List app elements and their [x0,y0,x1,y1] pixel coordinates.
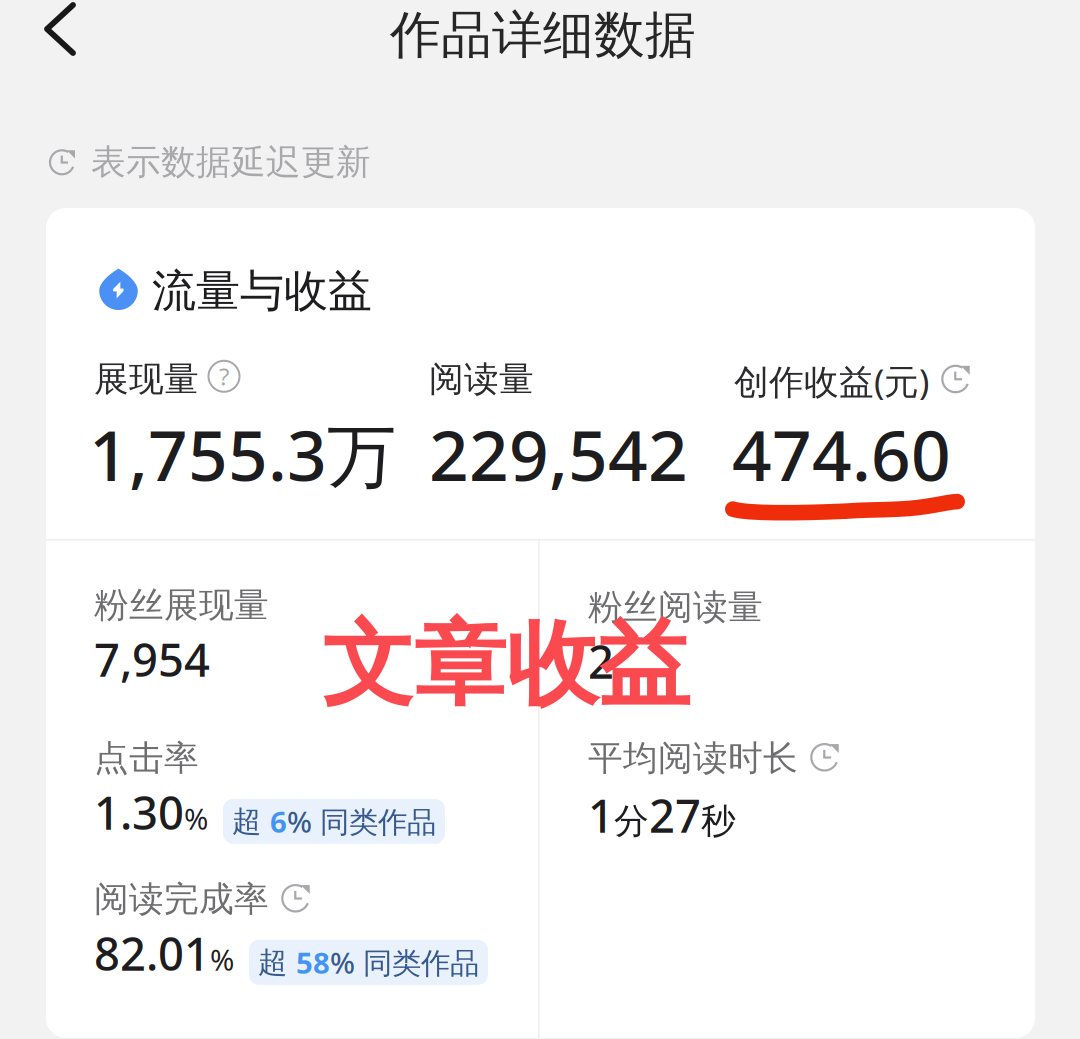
staticText: 文章收益 [322,608,690,721]
staticText: % [210,940,234,979]
staticText: 58 [296,943,330,982]
staticText: % [184,799,208,838]
staticText: 82.01 [94,923,210,983]
staticText: 分 [614,800,649,842]
button[interactable]: 关于展现量的说明 [207,359,241,393]
staticText: 1,755.3万 [89,408,396,500]
staticText: 创作收益(元) [734,358,929,404]
staticText: 229,542 [429,408,688,500]
staticText: 秒 [701,800,736,842]
staticText: 表示数据延迟更新 [91,141,371,184]
staticText: 粉丝阅读量 [588,586,763,629]
staticText: % 同类作品 [330,943,479,982]
staticText: 1.30 [94,782,184,842]
staticText: 展现量 [94,358,199,401]
staticText: 流量与收益 [152,264,372,318]
staticText: 点击率 [94,737,199,780]
staticText: 超 [232,803,270,839]
staticText: 平均阅读时长 [588,737,798,780]
staticText: 2 [588,631,614,691]
staticText: 超 [258,944,296,980]
staticText: % 同类作品 [287,802,436,841]
staticText: 474.60 [732,408,951,500]
staticText: 1 [588,785,614,845]
staticText: 作品详细数据 [390,4,696,66]
staticText: 6 [270,802,287,841]
staticText: ? [219,360,229,392]
button[interactable]: Back [8,0,112,67]
staticText: 7,954 [94,629,210,689]
staticText: 27 [649,785,701,845]
staticText: 粉丝展现量 [94,584,269,627]
staticText: 阅读量 [429,358,534,401]
staticText: 阅读完成率 [94,878,269,921]
